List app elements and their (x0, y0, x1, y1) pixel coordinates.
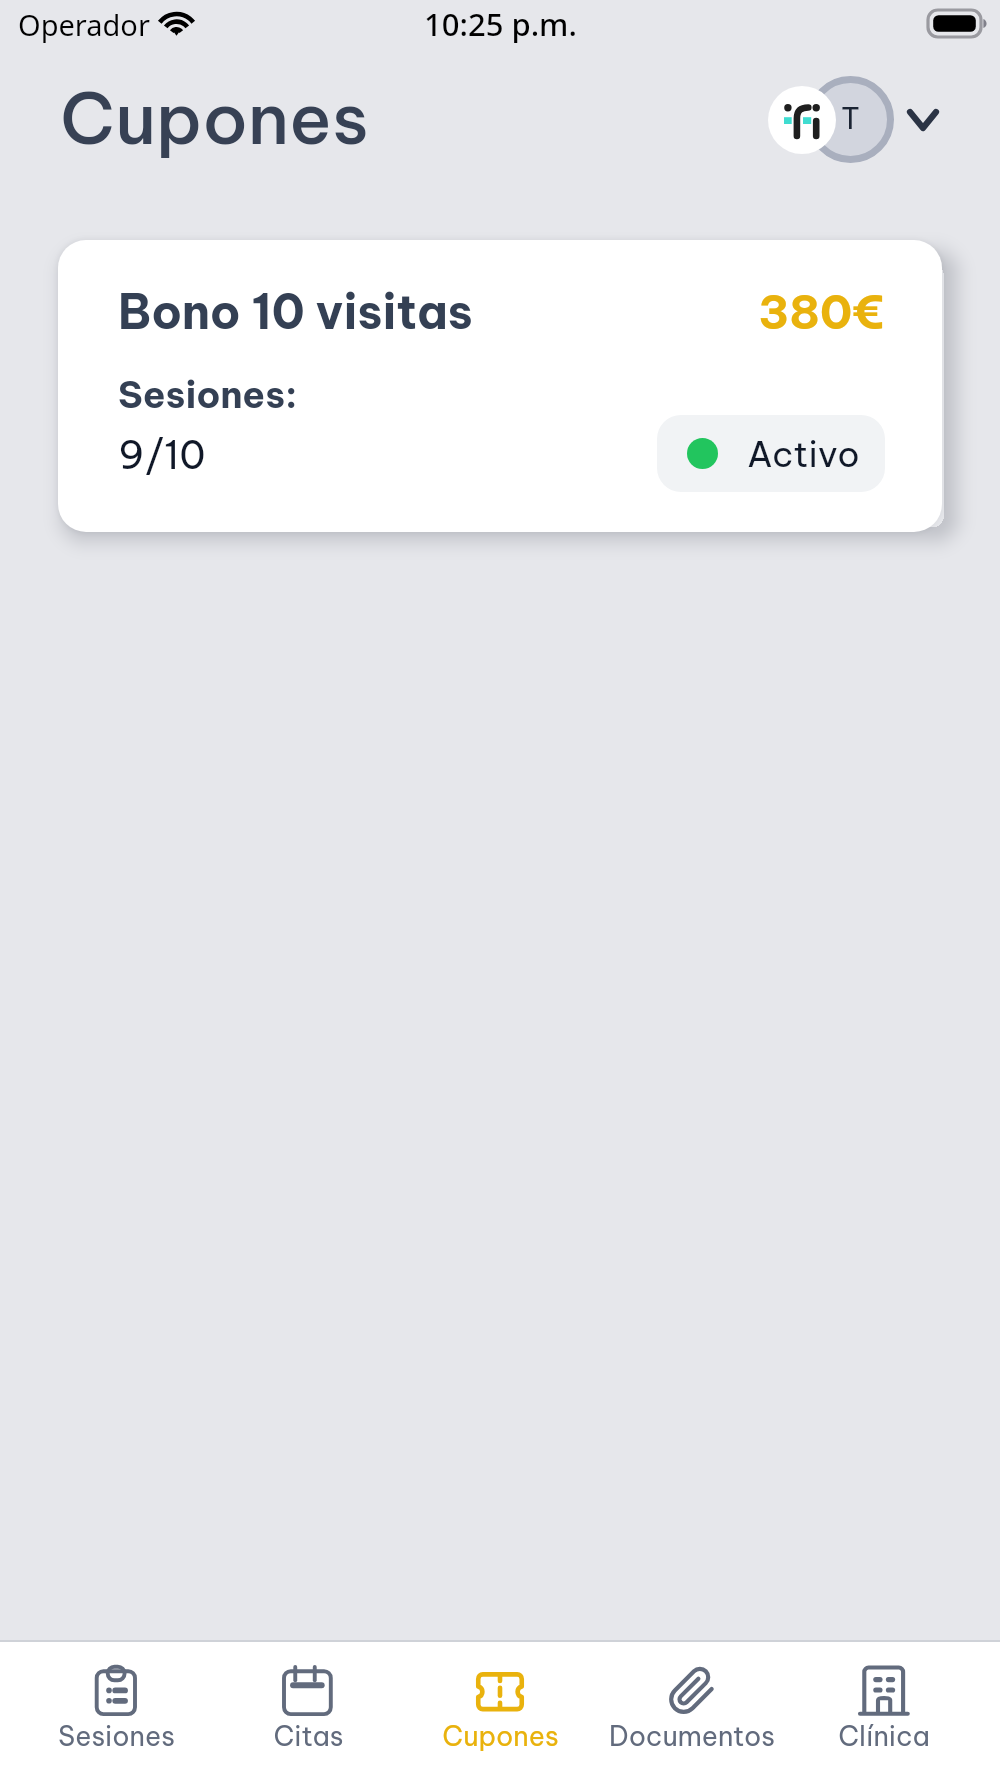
button[interactable]: Sesiones (20, 1642, 212, 1778)
staticText: Cupones (60, 73, 369, 163)
staticText: Clínica (838, 1719, 930, 1753)
button[interactable]: Activo (657, 415, 885, 492)
button[interactable]: Citas (212, 1642, 404, 1778)
staticText: T (841, 100, 860, 137)
other: Desplegar (906, 108, 940, 132)
button[interactable]: Documentos (596, 1642, 788, 1778)
staticText: Sesiones: (118, 371, 298, 418)
staticText: 9/10 (118, 430, 206, 479)
button[interactable]: Clínica (788, 1642, 980, 1778)
staticText: Operador (18, 5, 150, 44)
staticText: Citas (273, 1719, 344, 1753)
staticText: Activo (747, 432, 860, 476)
button[interactable]: Cambiar de perfil (0, 56, 1000, 166)
staticText: 380€ (758, 283, 884, 341)
button[interactable]: Cupones (404, 1642, 596, 1778)
staticText: Bono 10 visitas (118, 282, 473, 341)
staticText: Cupones (442, 1719, 559, 1753)
button[interactable]: Bono 10 visitas (58, 240, 942, 532)
staticText: Sesiones (58, 1719, 175, 1753)
staticText: Documentos (609, 1719, 775, 1753)
staticText: 10:25 p.m. (424, 3, 577, 45)
